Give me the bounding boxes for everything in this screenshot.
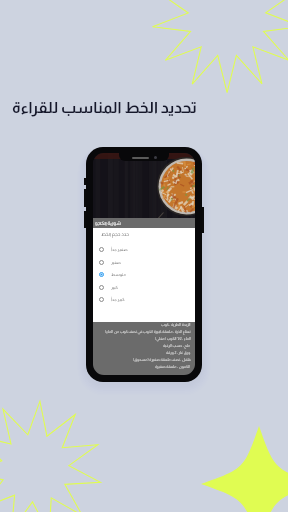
- button[interactable]: كبير جداً: [93, 293, 195, 306]
- staticText: حدد حجم الخط: [101, 232, 129, 237]
- staticText: ملح : حسب الرغبة: [163, 344, 191, 348]
- button[interactable]: شوربة الكاجو: [93, 218, 195, 228]
- button[interactable]: متوسط: [93, 268, 195, 281]
- staticText: فلفل : نصف ملعقة صغيرة (مسحوق): [133, 358, 191, 362]
- staticText: متوسط: [111, 272, 127, 277]
- button[interactable]: صغير جداً: [93, 243, 195, 256]
- staticText: كبير جداً: [111, 297, 125, 302]
- staticText: شوربة الكاجو: [95, 221, 121, 226]
- staticText: صغير جداً: [111, 247, 128, 252]
- staticText: كبير: [111, 285, 118, 290]
- button[interactable]: صغير: [93, 256, 195, 269]
- staticText: الماء : 1/2 الكوب (مغلي): [155, 337, 191, 341]
- staticText: صغير: [111, 260, 121, 265]
- staticText: تحديد الخط المناسب للقراءة: [12, 99, 197, 116]
- staticText: ورق غار : 2 ورقة: [166, 351, 191, 355]
- staticText: الزبدة الطرية : كوب: [161, 323, 191, 327]
- button[interactable]: كبير: [93, 281, 195, 294]
- staticText: نعناع الذرة : ملعقة كبيرة (تذوب في نصف ك…: [105, 330, 191, 334]
- staticText: الكمون : ملعقة صغيرة: [155, 365, 191, 369]
